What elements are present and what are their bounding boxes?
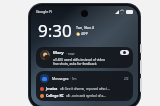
staticText: Messages [52,76,69,81]
staticText: Tue, Nov 4 [76,25,94,30]
staticText: Mary [53,50,64,56]
button[interactable]: Jessica [40,86,129,91]
button[interactable]: Mary [36,47,133,68]
staticText: few shots, asks for feedback [53,61,97,65]
staticText: all: See it chemo, reposed who i... [60,87,110,91]
staticText: · now [66,51,75,56]
staticText: 9:30 [38,19,72,42]
staticText: 48°F [81,31,89,36]
staticText: all: .ooin anti symbol of a... [66,94,106,98]
button[interactable]: Messages [36,71,133,101]
button[interactable]: College KC [40,93,129,98]
other: App badge [120,50,129,55]
staticText: Jessica [46,86,58,91]
staticText: 2/2 [124,77,129,81]
staticText: Google Fi [36,9,53,14]
staticText: · 5m [70,77,77,81]
staticText: College KC [46,93,64,98]
staticText: all 400 word stills instead of video ema… [53,57,118,61]
